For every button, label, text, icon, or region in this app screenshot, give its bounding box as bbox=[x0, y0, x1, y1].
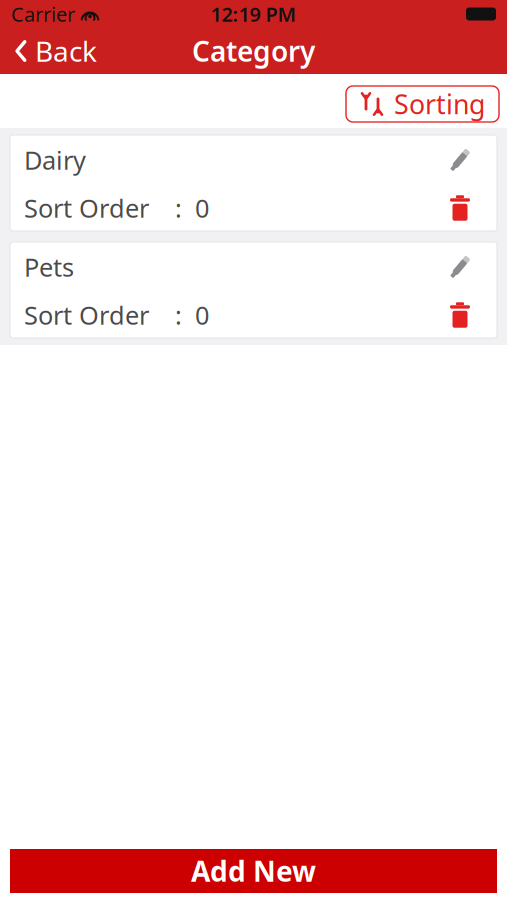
staticText: 0 bbox=[195, 191, 209, 225]
button[interactable]: Edit Pets bbox=[437, 244, 483, 290]
staticText: Add New bbox=[191, 852, 316, 890]
staticText: 12:19 PM bbox=[210, 1, 296, 27]
staticText: Sorting bbox=[394, 86, 485, 122]
staticText: Carrier bbox=[11, 1, 75, 27]
staticText: Dairy bbox=[24, 143, 86, 177]
staticText: : bbox=[175, 191, 182, 225]
button[interactable]: Edit Dairy bbox=[437, 137, 483, 183]
staticText: 0 bbox=[195, 298, 209, 332]
staticText: Pets bbox=[24, 250, 74, 284]
staticText: Sort Order bbox=[24, 191, 149, 225]
button[interactable]: Add New bbox=[10, 849, 497, 893]
button[interactable]: Sorting bbox=[346, 86, 499, 122]
staticText: Category bbox=[192, 32, 315, 70]
button[interactable]: Back bbox=[0, 28, 111, 74]
staticText: : bbox=[175, 298, 182, 332]
staticText: Sort Order bbox=[24, 298, 149, 332]
button[interactable]: Delete Dairy bbox=[437, 185, 483, 231]
staticText: Back bbox=[35, 32, 97, 70]
button[interactable]: Delete Pets bbox=[437, 292, 483, 338]
